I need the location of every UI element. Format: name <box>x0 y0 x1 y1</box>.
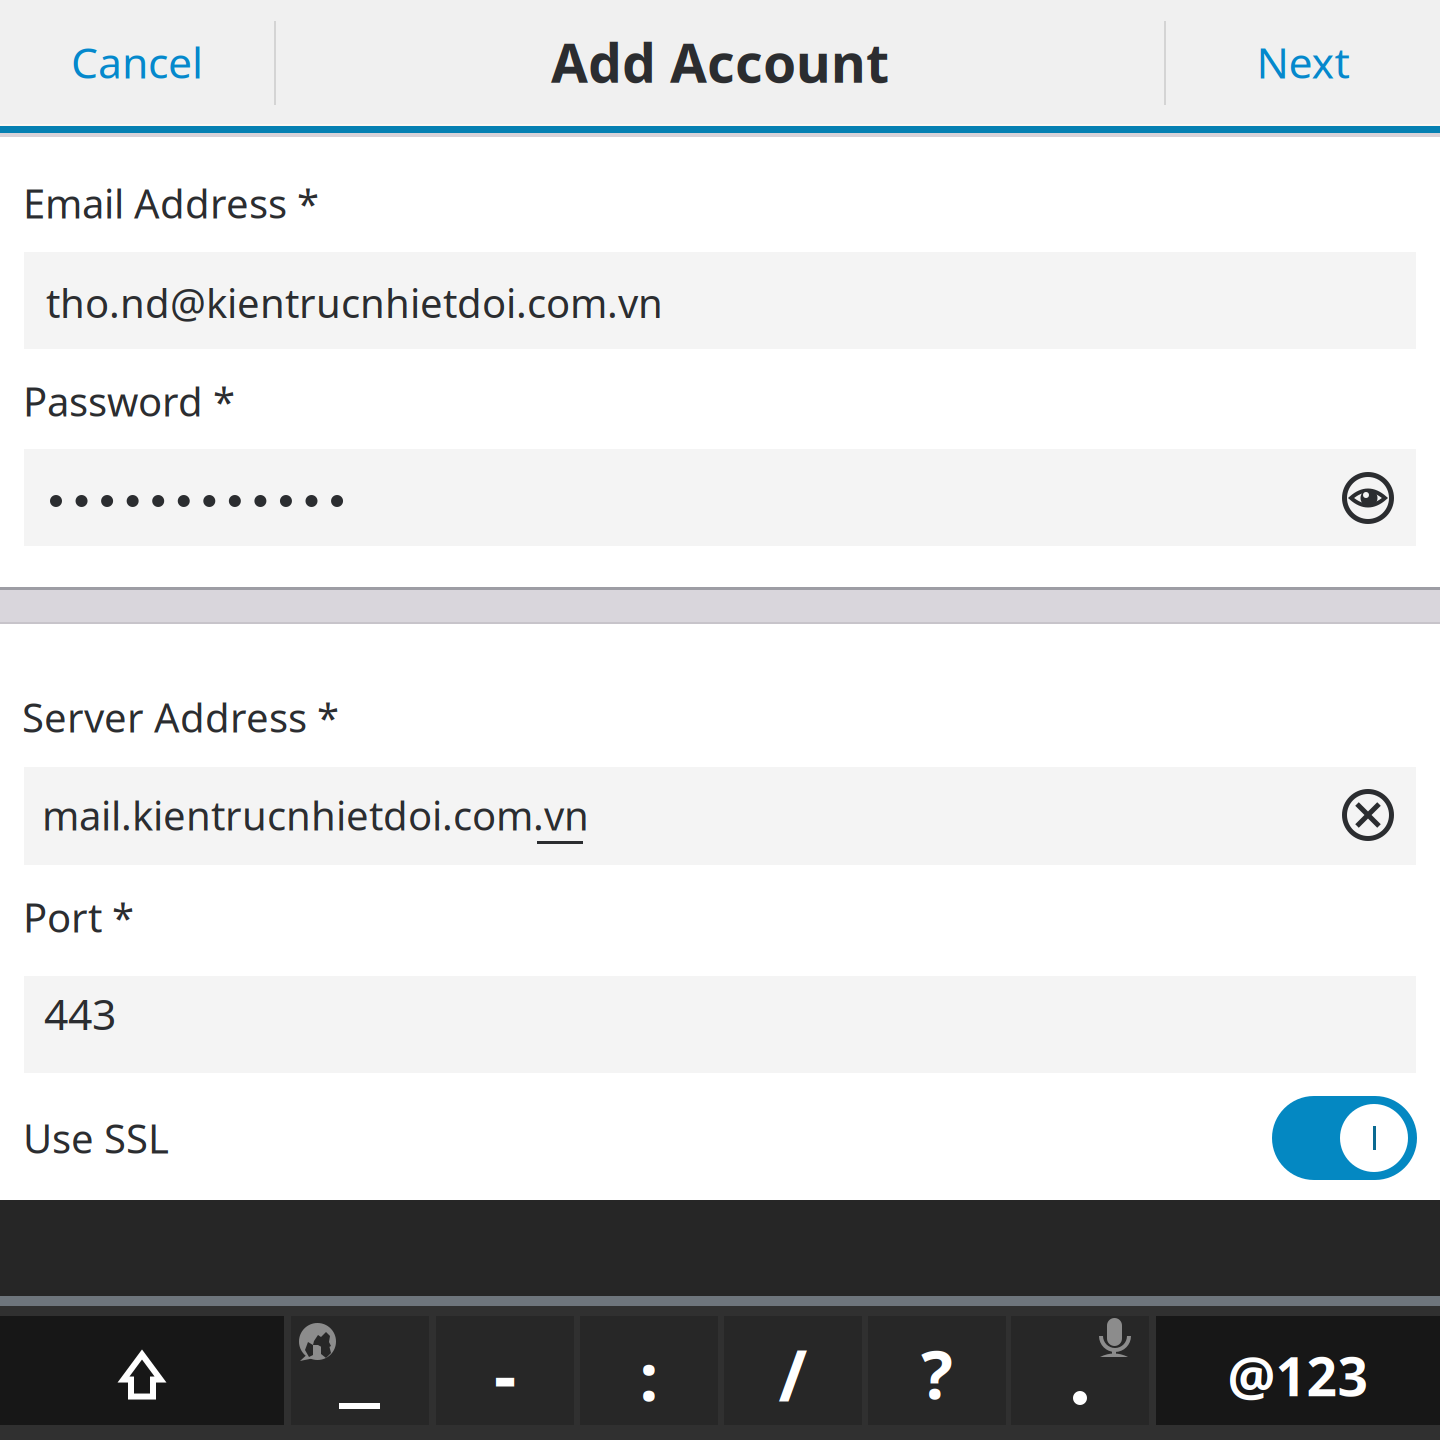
button[interactable]: Period <box>1011 1316 1149 1425</box>
staticText: - <box>494 1327 516 1420</box>
staticText: Next <box>1256 34 1349 90</box>
staticText: Email Address * <box>23 176 319 229</box>
staticText: Port * <box>23 890 134 943</box>
button[interactable]: - <box>436 1316 574 1425</box>
staticText: / <box>778 1328 807 1421</box>
staticText: @123 <box>1227 1340 1368 1411</box>
button[interactable]: Show password <box>1340 470 1396 526</box>
button[interactable]: Use SSL <box>0 1077 1440 1195</box>
button[interactable]: Cancel <box>0 0 274 124</box>
button[interactable]: @123 <box>1156 1316 1440 1425</box>
button[interactable]: Shift <box>0 1316 284 1425</box>
staticText: Add Account <box>551 27 889 97</box>
button[interactable]: tho.nd@kientrucnhietdoi.com.vn <box>24 252 1416 349</box>
staticText: 443 <box>44 985 116 1042</box>
button[interactable]: ? <box>868 1316 1006 1425</box>
staticText: Cancel <box>71 34 203 90</box>
button[interactable]: Password <box>24 449 1416 546</box>
button[interactable]: Clear server address <box>1340 787 1396 843</box>
staticText: mail.kientrucnhietdoi.com.vn <box>42 788 589 841</box>
button[interactable]: Underscore <box>291 1316 429 1425</box>
staticText: Password * <box>23 374 235 427</box>
staticText: Use SSL <box>23 1111 169 1164</box>
staticText: Server Address * <box>22 690 339 743</box>
staticText: tho.nd@kientrucnhietdoi.com.vn <box>46 276 663 329</box>
button[interactable]: Next <box>1166 0 1440 124</box>
button[interactable]: / <box>724 1316 862 1425</box>
staticText: ? <box>921 1329 953 1418</box>
staticText: : <box>639 1331 658 1420</box>
button[interactable]: 443 <box>24 976 1416 1073</box>
button[interactable]: mail.kientrucnhietdoi.com.vn <box>24 767 1416 865</box>
button[interactable]: : <box>580 1316 718 1425</box>
